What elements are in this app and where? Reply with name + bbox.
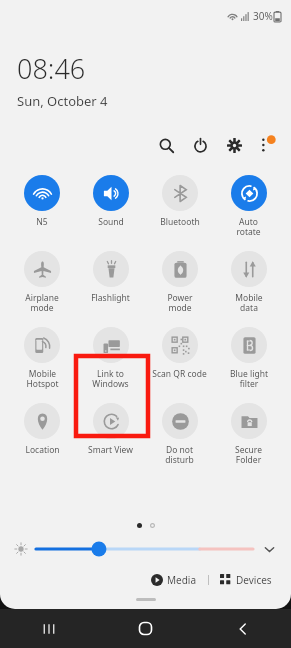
staticText: Smart View [88, 444, 133, 456]
button[interactable]: Media [146, 570, 202, 590]
button[interactable]: Devices [215, 570, 277, 590]
button[interactable]: Sound [76, 172, 145, 231]
staticText: Airplane mode [25, 292, 59, 314]
button[interactable]: Location [8, 400, 76, 459]
button[interactable]: Expand brightness settings [259, 539, 279, 559]
staticText: Secure Folder [235, 444, 262, 466]
button[interactable]: Secure Folder [214, 400, 283, 469]
button[interactable]: Power [187, 132, 213, 158]
button[interactable]: Auto brightness [12, 540, 30, 558]
staticText: Media [167, 573, 197, 587]
button[interactable]: Do not disturb [145, 400, 214, 469]
staticText: Blue light filter [230, 368, 268, 390]
staticText: Location [25, 444, 60, 456]
button[interactable] [36, 538, 253, 560]
staticText: Do not disturb [165, 444, 194, 466]
staticText: Flashlight [91, 292, 130, 304]
button[interactable]: Blue light filter [214, 324, 283, 393]
staticText: Sun, October 4 [17, 92, 108, 110]
staticText: Mobile Hotspot [26, 368, 59, 390]
button[interactable]: Auto rotate [214, 172, 283, 241]
button[interactable]: Flashlight [76, 248, 145, 307]
staticText: Scan QR code [152, 368, 207, 380]
staticText: 30% [253, 9, 273, 23]
button[interactable]: Smart View [76, 400, 145, 459]
staticText: Sound [98, 216, 124, 228]
button[interactable]: More options [253, 132, 279, 158]
staticText: Auto rotate [236, 216, 261, 238]
button[interactable]: Link to Windows [76, 324, 145, 393]
button[interactable]: Mobile data [214, 248, 283, 317]
staticText: Bluetooth [160, 216, 200, 228]
button[interactable]: Search [153, 132, 179, 158]
button[interactable]: Settings [221, 132, 247, 158]
button[interactable]: Airplane mode [8, 248, 76, 317]
button[interactable]: Home [97, 609, 194, 648]
button[interactable]: Bluetooth [145, 172, 214, 231]
button[interactable]: Recents [0, 609, 97, 648]
button[interactable]: Power mode [145, 248, 214, 317]
staticText: Link to Windows [92, 368, 129, 390]
staticText: N5 [36, 216, 48, 228]
staticText: Devices [236, 573, 272, 587]
button[interactable]: Back [194, 609, 291, 648]
button[interactable]: Scan QR code [145, 324, 214, 383]
staticText: 08:46 [17, 50, 86, 87]
button[interactable]: N5 [8, 172, 76, 231]
staticText: Mobile data [235, 292, 263, 314]
button[interactable]: Mobile Hotspot [8, 324, 76, 393]
staticText: Power mode [167, 292, 193, 314]
